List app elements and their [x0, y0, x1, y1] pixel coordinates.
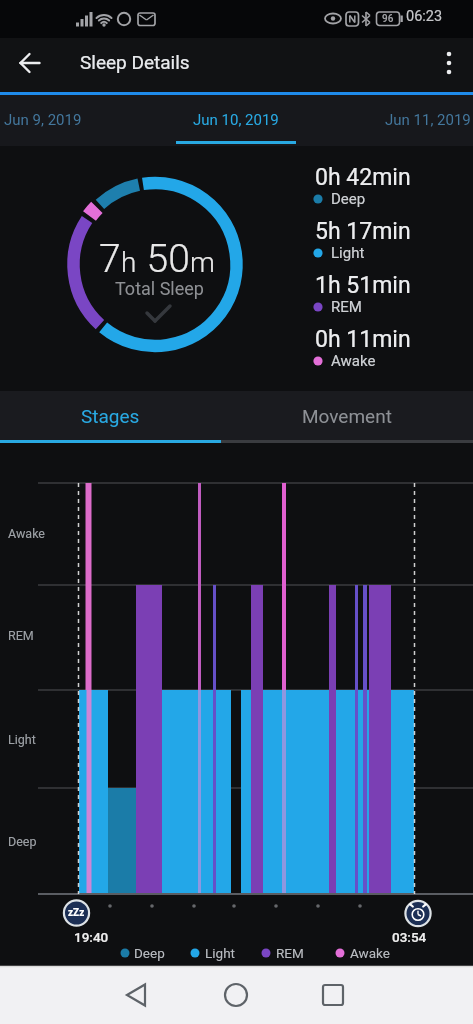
staticText: 5h 17min	[315, 218, 411, 245]
staticText: Jun 11, 2019	[385, 111, 471, 129]
staticText: Awake	[8, 526, 45, 541]
staticText: Stages	[81, 405, 140, 427]
staticText: 1h 51min	[315, 272, 411, 299]
staticText: Awake	[331, 352, 376, 370]
staticText: Movement	[302, 405, 392, 427]
button[interactable]: Jun 10, 2019	[156, 102, 316, 138]
staticText: zZz	[68, 907, 85, 919]
staticText: 7	[99, 236, 121, 282]
staticText: Awake	[350, 945, 390, 961]
staticText: 0h 11min	[315, 326, 411, 353]
staticText: Light	[205, 945, 235, 961]
button[interactable]	[98, 970, 176, 1020]
staticText: m	[190, 246, 215, 279]
staticText: Jun 9, 2019	[4, 111, 82, 129]
button[interactable]: Jun 9, 2019	[0, 102, 98, 138]
button[interactable]	[197, 970, 275, 1020]
staticText: Jun 10, 2019	[193, 111, 279, 129]
staticText: Light	[8, 732, 36, 747]
button[interactable]	[430, 44, 470, 84]
staticText: REM	[331, 298, 362, 316]
staticText: 19:40	[74, 929, 109, 945]
staticText: Light	[331, 244, 365, 262]
button[interactable]: Stages	[30, 391, 190, 440]
staticText: h	[121, 246, 137, 279]
staticText: Deep	[8, 834, 37, 849]
staticText: 96	[382, 13, 394, 25]
staticText: 03:54	[392, 929, 427, 945]
staticText: Sleep Details	[80, 51, 190, 73]
button[interactable]: Movement	[267, 391, 427, 440]
button[interactable]	[294, 970, 372, 1020]
button[interactable]	[8, 44, 52, 84]
staticText: 50	[137, 236, 190, 282]
staticText: Total Sleep	[115, 278, 204, 299]
staticText: 06:23	[406, 8, 443, 25]
staticText: Deep	[331, 190, 366, 208]
staticText: REM	[8, 628, 34, 643]
staticText: Deep	[134, 945, 165, 961]
staticText: REM	[276, 945, 304, 961]
staticText: 0h 42min	[315, 164, 411, 191]
button[interactable]: Jun 11, 2019	[373, 102, 473, 138]
